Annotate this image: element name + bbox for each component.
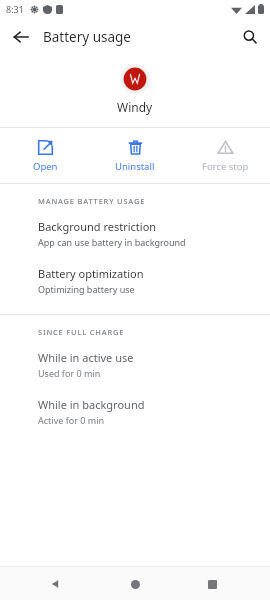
button[interactable]: While in active use (0, 343, 270, 390)
staticText: Battery usage (43, 28, 131, 46)
staticText: Active for 0 min (38, 414, 105, 426)
button[interactable]: Back (6, 22, 36, 52)
button[interactable]: Search (235, 22, 265, 52)
button[interactable]: Open (0, 135, 90, 177)
staticText: Windy (117, 99, 153, 115)
staticText: Force stop (202, 160, 249, 173)
button[interactable]: Background restriction (0, 212, 270, 259)
button[interactable]: Battery optimization (0, 259, 270, 306)
button[interactable]: Recent apps (199, 571, 225, 597)
staticText: Open (33, 160, 58, 173)
staticText: Used for 0 min (38, 367, 101, 379)
staticText: While in active use (38, 350, 134, 365)
staticText: 8:31 (6, 3, 24, 15)
button[interactable]: Home (122, 571, 148, 597)
button[interactable]: While in background (0, 390, 270, 437)
staticText: SINCE FULL CHARGE (38, 327, 125, 337)
button[interactable]: Force stop (180, 135, 270, 177)
staticText: Battery optimization (38, 266, 144, 281)
staticText: Optimizing battery use (38, 283, 135, 295)
staticText: App can use battery in background (38, 236, 186, 248)
button[interactable]: Back (42, 571, 68, 597)
button[interactable]: Uninstall (90, 135, 180, 177)
staticText: MANAGE BATTERY USAGE (38, 196, 146, 206)
staticText: Uninstall (115, 160, 155, 173)
staticText: While in background (38, 397, 145, 412)
staticText: Background restriction (38, 219, 157, 234)
